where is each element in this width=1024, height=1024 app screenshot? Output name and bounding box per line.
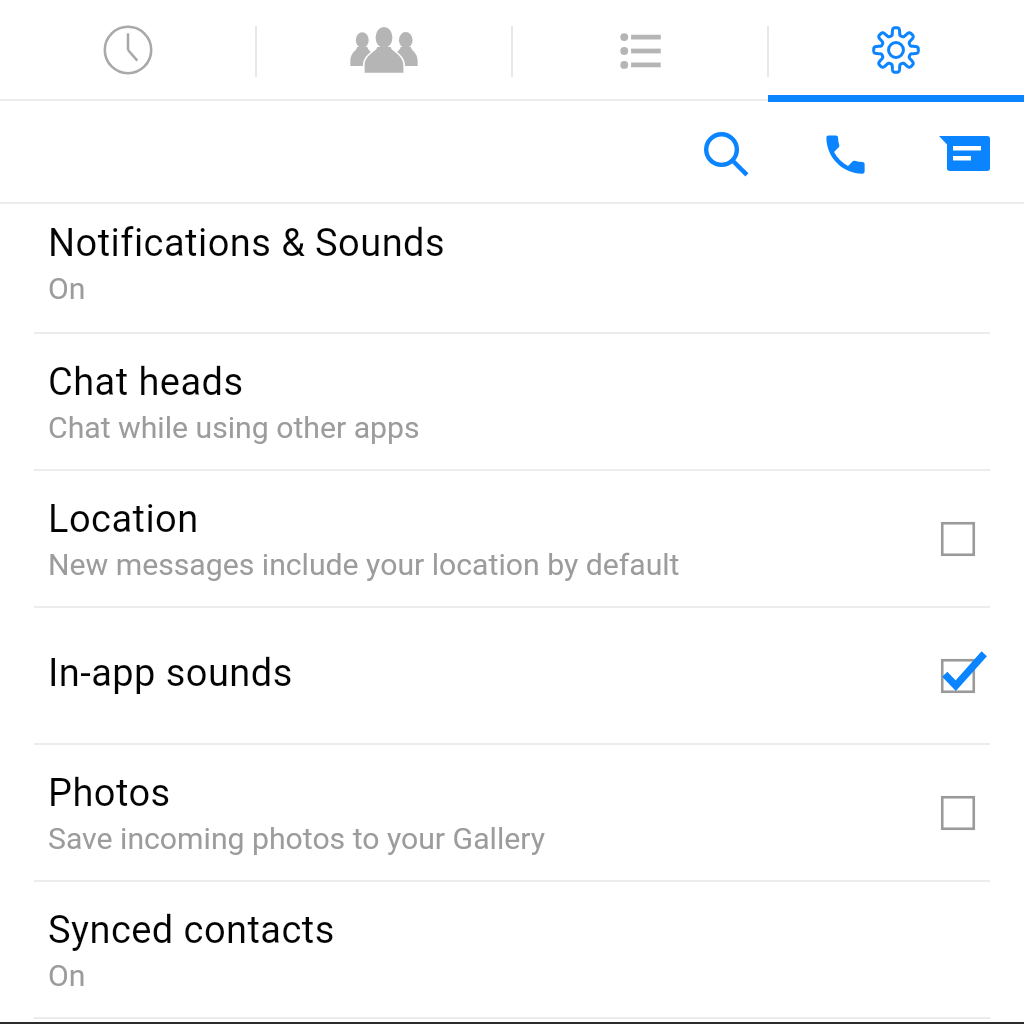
- staticText: Chat while using other apps: [48, 410, 420, 445]
- staticText: Save incoming photos to your Gallery: [48, 821, 546, 856]
- button[interactable]: In-app sounds: [0, 608, 1024, 743]
- button[interactable]: Contacts: [256, 0, 512, 99]
- button[interactable]: Chat heads: [0, 334, 1024, 469]
- staticText: New messages include your location by de…: [48, 547, 680, 582]
- button[interactable]: Notifications & Sounds: [0, 204, 1024, 332]
- staticText: Chat heads: [48, 360, 244, 405]
- staticText: Notifications & Sounds: [48, 221, 446, 266]
- staticText: In-app sounds: [48, 651, 293, 696]
- button[interactable]: Location: [0, 471, 1024, 606]
- button[interactable]: Photos: [0, 745, 1024, 880]
- staticText: On: [48, 271, 86, 306]
- button[interactable]: Search: [667, 101, 786, 202]
- button[interactable]: Recent calls: [0, 0, 256, 99]
- staticText: On: [48, 958, 86, 993]
- button[interactable]: Call: [786, 101, 905, 202]
- button[interactable]: Lists: [512, 0, 768, 99]
- button[interactable]: Synced contacts: [0, 882, 1024, 1017]
- staticText: Location: [48, 497, 199, 542]
- staticText: Synced contacts: [48, 908, 335, 953]
- button[interactable]: In-app sounds: [927, 645, 989, 707]
- staticText: Photos: [48, 771, 171, 816]
- button[interactable]: Location: [927, 508, 989, 570]
- button[interactable]: New message: [905, 101, 1024, 202]
- button[interactable]: Settings: [768, 0, 1024, 99]
- button[interactable]: Photos: [927, 782, 989, 844]
